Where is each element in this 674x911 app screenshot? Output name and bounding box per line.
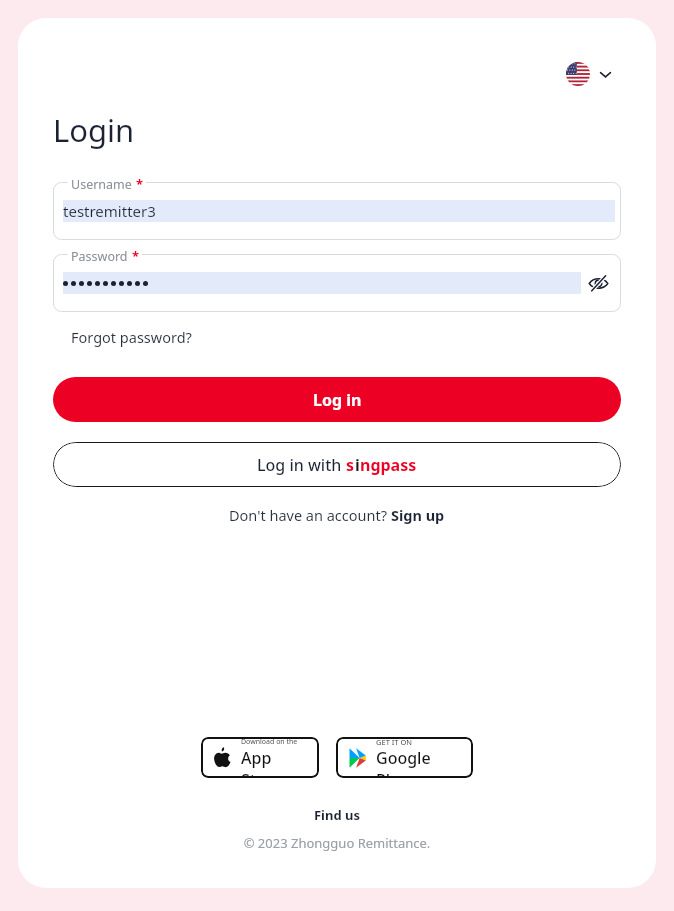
button[interactable]: Forgot password? bbox=[64, 323, 199, 351]
staticText: s bbox=[346, 454, 355, 476]
staticText: Sign up bbox=[391, 505, 445, 525]
staticText: GET IT ON bbox=[376, 737, 412, 747]
button[interactable]: Sign up bbox=[391, 505, 445, 525]
button[interactable]: Log in bbox=[53, 377, 621, 422]
staticText: testremitter3 bbox=[63, 201, 156, 221]
staticText: Password bbox=[71, 248, 128, 265]
staticText: * bbox=[132, 247, 140, 265]
staticText: ngpass bbox=[360, 454, 417, 476]
staticText: Login bbox=[53, 109, 135, 151]
staticText: App Store bbox=[241, 747, 311, 778]
button[interactable]: Log in with bbox=[53, 442, 621, 487]
staticText: Log in bbox=[313, 389, 362, 411]
staticText: Find us bbox=[18, 806, 656, 824]
button[interactable]: Password input bbox=[53, 254, 621, 312]
staticText: Log in with bbox=[257, 454, 346, 476]
button[interactable]: Show password bbox=[581, 266, 615, 300]
button[interactable]: Get it on Google Play bbox=[336, 737, 473, 778]
staticText: Google Play bbox=[376, 747, 465, 778]
staticText: Forgot password? bbox=[71, 327, 192, 347]
button[interactable]: Select language, English bbox=[562, 58, 616, 90]
staticText: © 2023 Zhongguo Remittance. bbox=[18, 834, 656, 852]
button[interactable]: Username input bbox=[53, 182, 621, 240]
staticText: Don't have an account? bbox=[229, 505, 391, 525]
button[interactable]: Download on the App Store bbox=[201, 737, 319, 778]
staticText: Username bbox=[71, 176, 132, 193]
staticText: * bbox=[136, 175, 144, 193]
staticText: Download on the bbox=[241, 737, 298, 747]
staticText: i bbox=[355, 454, 360, 476]
